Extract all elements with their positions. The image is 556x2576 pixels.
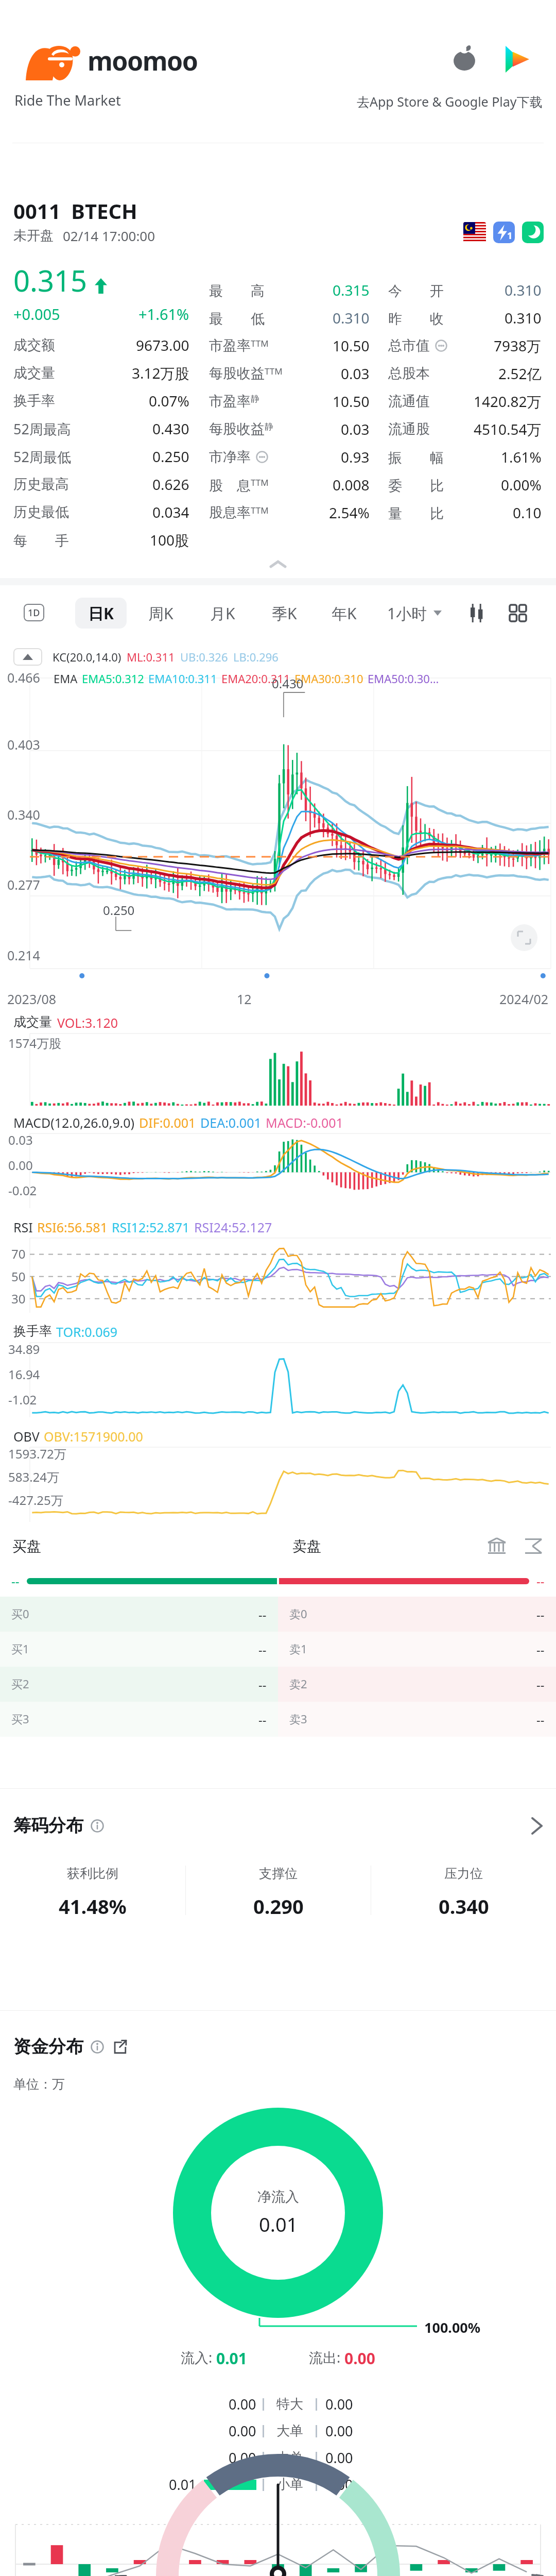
staticText: -- [11,1572,20,1589]
button[interactable]: 月K [202,598,243,629]
staticText: 0.466 [7,669,40,686]
staticText: 成交额 [13,336,55,354]
staticText: UB:0.326 [180,649,228,665]
staticText: 0.250 [152,447,189,466]
staticText: 市盈率 [209,337,251,354]
button[interactable]: 季K [264,598,305,629]
staticText: 34.89 [8,1341,40,1358]
staticText: 去App Store & Google Play下载 [357,93,543,110]
staticText: 583.24万 [8,1468,60,1485]
button[interactable]: 1D [24,604,44,621]
staticText: 0.310 [505,308,542,328]
staticText: 1593.72万 [8,1445,66,1462]
staticText: 4510.54万 [474,419,542,439]
staticText: EMA10:0.311 [148,671,217,686]
staticText: OBV:1571900.00 [44,1428,143,1445]
staticText: 0.277 [7,876,40,893]
staticText: RSI [13,1218,33,1236]
button[interactable]: Candlestick chart type [462,597,491,630]
staticText: 特大 [276,2396,303,2413]
staticText: 2.52亿 [498,364,542,383]
staticText: 0.00 [325,2475,353,2494]
staticText: 1D [28,606,40,619]
staticText: TOR:0.069 [56,1323,118,1341]
staticText: 卖3 [289,1711,307,1726]
staticText: 成交量 [13,364,55,382]
staticText: 流通值 [388,393,430,410]
staticText: 0.00 [229,2421,256,2441]
staticText: 未开盘 [13,227,54,244]
button[interactable]: 1小时 [387,598,442,629]
staticText: 7938万 [494,336,542,355]
staticText: 历史最低 [13,503,69,521]
staticText: 中单 [276,2449,303,2466]
button[interactable]: Order book settings [521,1534,546,1558]
staticText: 0.01 [216,2348,247,2369]
staticText: 买盘 [12,1537,41,1555]
staticText: 100股 [150,530,189,550]
button[interactable]: 日K [75,598,127,629]
staticText: 静 [251,394,259,404]
staticText: 季K [272,603,297,624]
staticText: +0.005 [13,304,60,324]
staticText: 52周最低 [13,447,71,466]
staticText: KC(20.0,14.0) [53,649,121,665]
staticText: 1574万股 [8,1035,61,1052]
staticText: 1420.82万 [474,392,542,411]
staticText: TTM [251,477,269,488]
staticText: 成交量 [13,1014,52,1030]
staticText: 0.03 [341,364,370,383]
staticText: EMA [54,671,78,686]
staticText: 0.340 [439,1893,489,1920]
staticText: 0.008 [333,475,370,495]
staticText: 0.03 [341,419,370,439]
staticText: RSI12:52.871 [112,1218,190,1236]
staticText: TTM [251,504,269,516]
staticText: 年K [332,603,357,624]
staticText: 今 开 [388,281,444,300]
staticText: 量 比 [388,503,444,522]
button[interactable]: More chart tools [503,597,532,630]
staticText: 单位：万 [13,2076,65,2092]
staticText: 昨 收 [388,309,444,328]
staticText: 0.00 [8,1157,33,1174]
staticText: -0.02 [8,1182,37,1199]
staticText: Ride The Market [14,91,121,110]
staticText: 0.00 [344,2348,375,2369]
staticText: 周K [148,603,173,624]
staticText: 52周最高 [13,419,71,438]
staticText: 卖1 [289,1641,307,1656]
button[interactable]: Broker queue [484,1533,510,1559]
staticText: 买3 [11,1711,29,1726]
button[interactable]: 周K [140,598,181,629]
staticText: 日K [88,603,114,624]
staticText: -- [536,1711,545,1728]
staticText: 最 高 [209,281,265,300]
staticText: 0.034 [152,502,189,522]
staticText: ML:0.311 [127,649,175,665]
staticText: MACD:-0.001 [266,1114,343,1131]
staticText: 0.340 [7,806,40,823]
staticText: 总市值 [388,337,430,354]
staticText: 1小时 [387,603,427,624]
staticText: 月K [210,603,235,624]
button[interactable]: Share [112,2040,127,2054]
staticText: RSI6:56.581 [37,1218,108,1236]
staticText: 静 [265,421,273,432]
staticText: 0.430 [152,419,189,438]
staticText: 获利比例 [67,1866,118,1882]
staticText: 股息率 [209,504,251,521]
staticText: 0.403 [7,736,40,753]
button[interactable]: 筹码分布 [0,1815,556,1837]
staticText: 100.00% [424,2318,481,2337]
staticText: 振 幅 [388,448,444,467]
staticText: -- [536,1572,545,1589]
button[interactable]: Collapse indicator [13,648,42,666]
staticText: 16.94 [8,1366,40,1383]
staticText: 0.250 [103,902,135,919]
button[interactable]: 年K [323,598,364,629]
staticText: EMA50:0.30… [368,671,439,686]
staticText: 10.50 [333,336,370,355]
staticText: 小单 [276,2476,303,2493]
staticText: 0.00 [325,2448,353,2467]
